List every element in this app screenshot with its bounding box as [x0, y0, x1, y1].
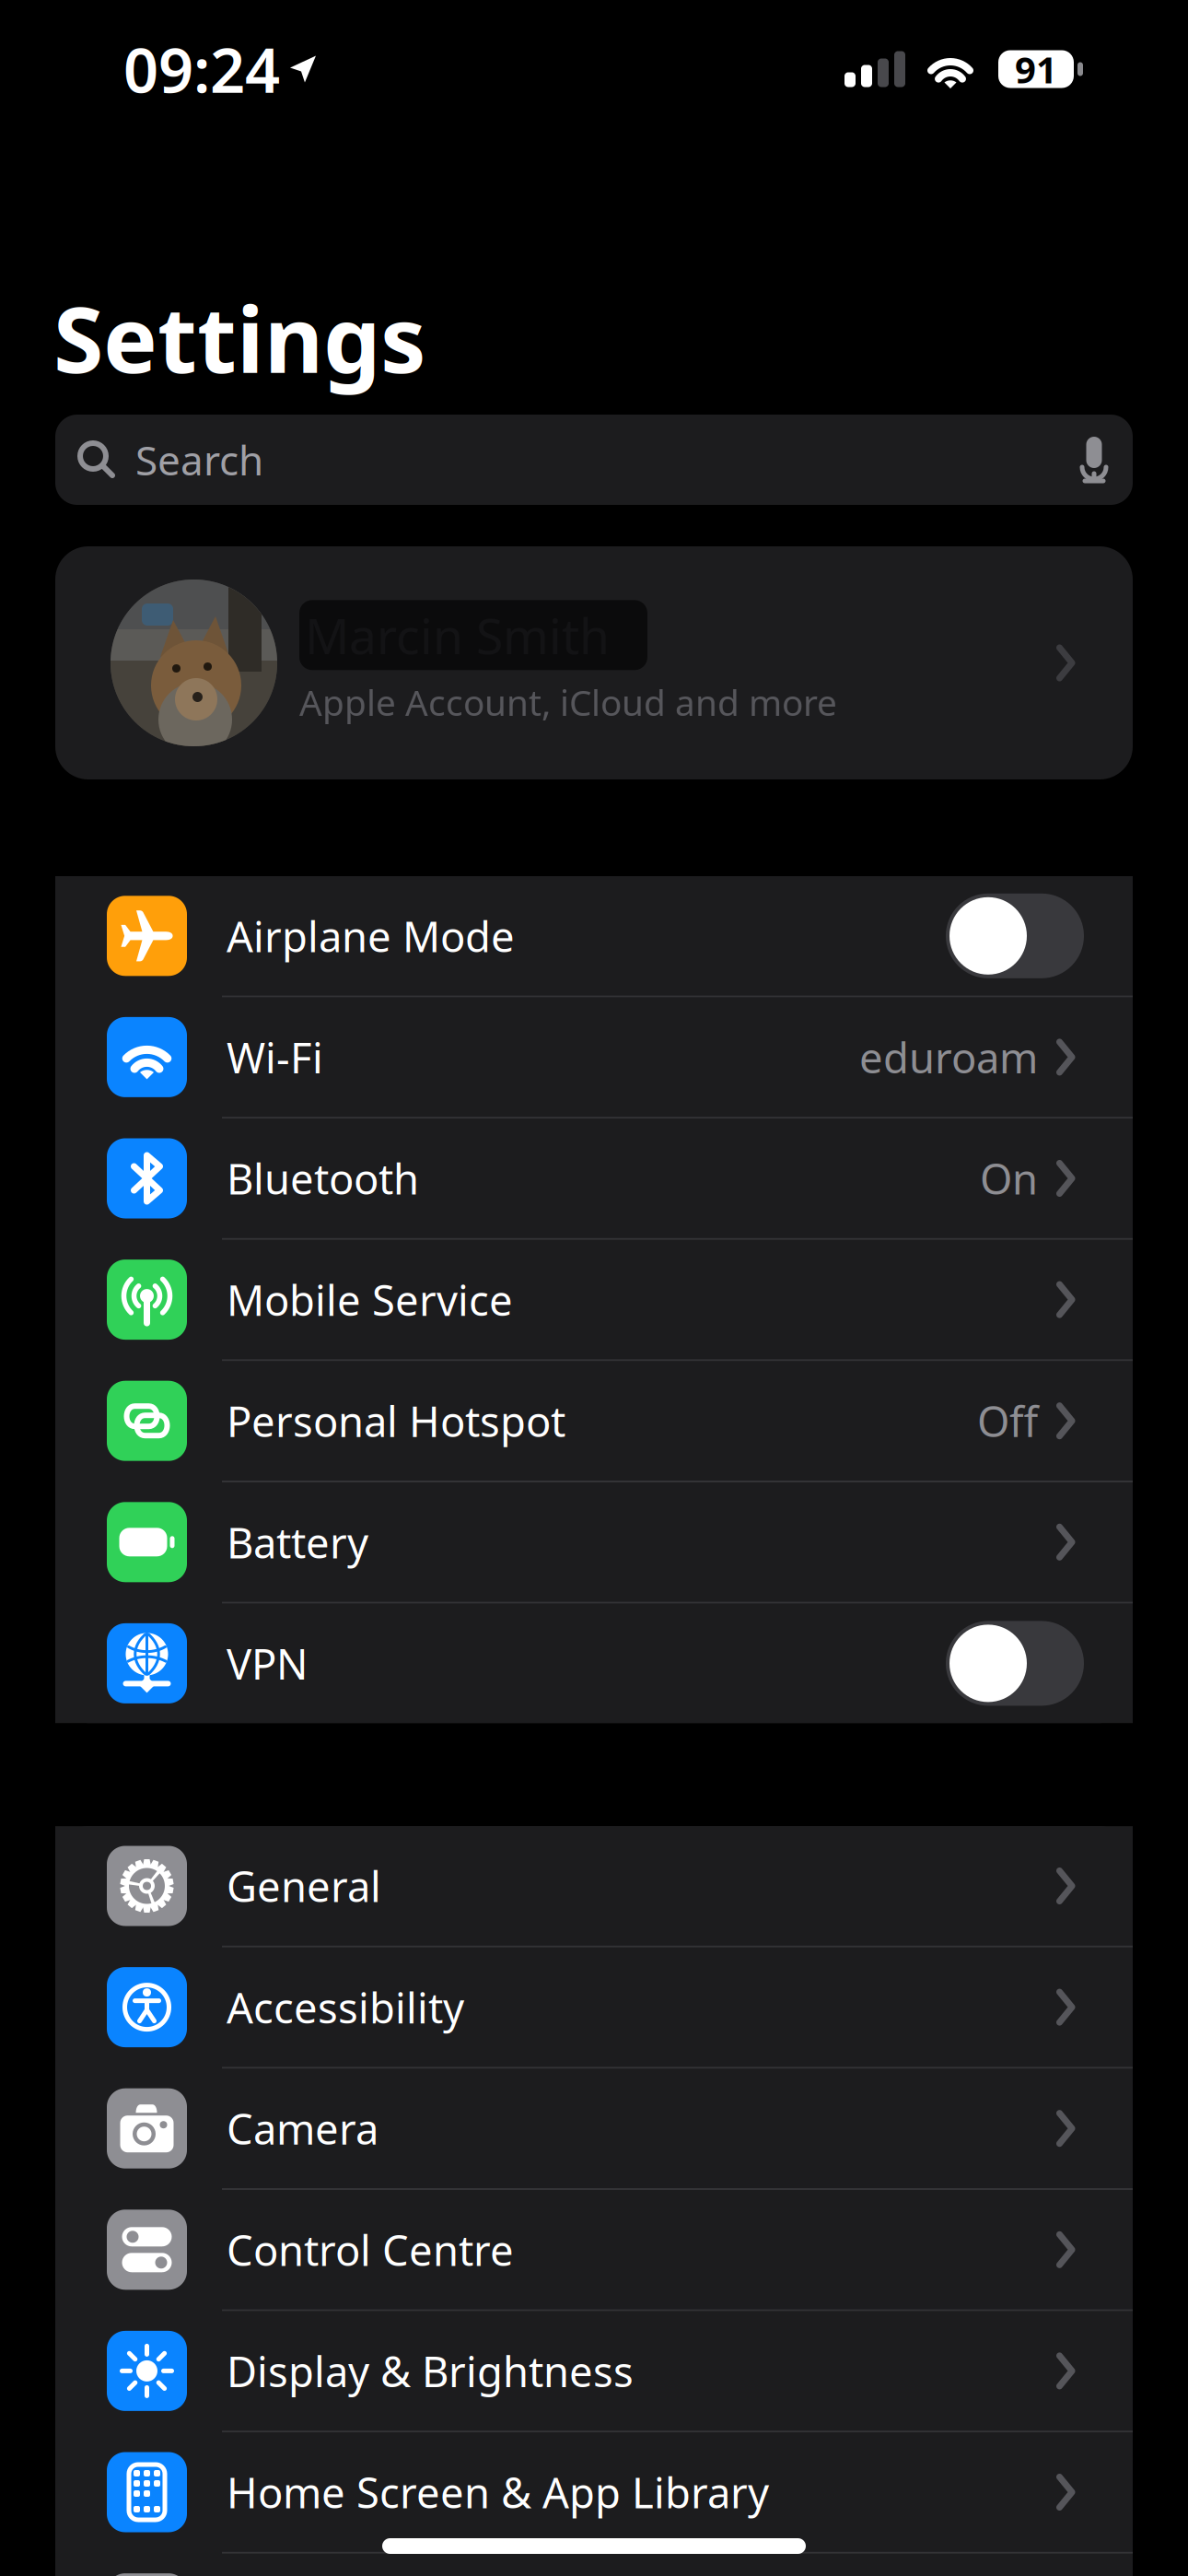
button[interactable]: Search: [55, 2554, 1133, 2576]
staticText: Display & Brightness: [227, 2343, 634, 2399]
button[interactable]: Bluetooth: [55, 1119, 1133, 1238]
button[interactable]: Home Screen & App Library: [55, 2432, 1133, 2552]
button[interactable]: General: [55, 1826, 1133, 1946]
staticText: General: [227, 1858, 381, 1914]
staticText: On: [980, 1151, 1038, 1206]
staticText: 91: [1015, 45, 1057, 94]
staticText: Battery: [227, 1514, 368, 1570]
staticText: Settings: [53, 277, 426, 398]
button[interactable]: Battery: [55, 1482, 1133, 1602]
button[interactable]: Marcin Smith: [55, 546, 1133, 779]
staticText: 09:24: [123, 28, 280, 110]
staticText: Bluetooth: [227, 1151, 419, 1206]
staticText: Camera: [227, 2101, 379, 2156]
staticText: Marcin Smith: [305, 602, 610, 668]
button[interactable]: Mobile Service: [55, 1240, 1133, 1359]
staticText: Airplane Mode: [227, 908, 515, 964]
staticText: eduroam: [859, 1029, 1038, 1085]
staticText: Apple Account, iCloud and more: [299, 678, 837, 726]
button[interactable]: Display & Brightness: [55, 2311, 1133, 2431]
staticText: Personal Hotspot: [227, 1393, 565, 1449]
staticText: Search: [135, 433, 263, 487]
staticText: Off: [977, 1393, 1038, 1449]
button[interactable]: Camera: [55, 2069, 1133, 2188]
button[interactable]: Accessibility: [55, 1947, 1133, 2067]
staticText: Control Centre: [227, 2222, 514, 2277]
staticText: VPN: [227, 1636, 308, 1691]
staticText: Accessibility: [227, 1979, 464, 2035]
staticText: Home Screen & App Library: [227, 2464, 769, 2520]
staticText: Mobile Service: [227, 1272, 513, 1327]
button[interactable]: Wi-Fi: [55, 997, 1133, 1117]
button[interactable]: Personal Hotspot: [55, 1361, 1133, 1481]
button[interactable]: VPN: [55, 1604, 1133, 1723]
button[interactable]: Search: [55, 415, 1133, 505]
staticText: Wi-Fi: [227, 1029, 323, 1085]
button[interactable]: Control Centre: [55, 2190, 1133, 2309]
button[interactable]: Airplane Mode: [55, 876, 1133, 996]
